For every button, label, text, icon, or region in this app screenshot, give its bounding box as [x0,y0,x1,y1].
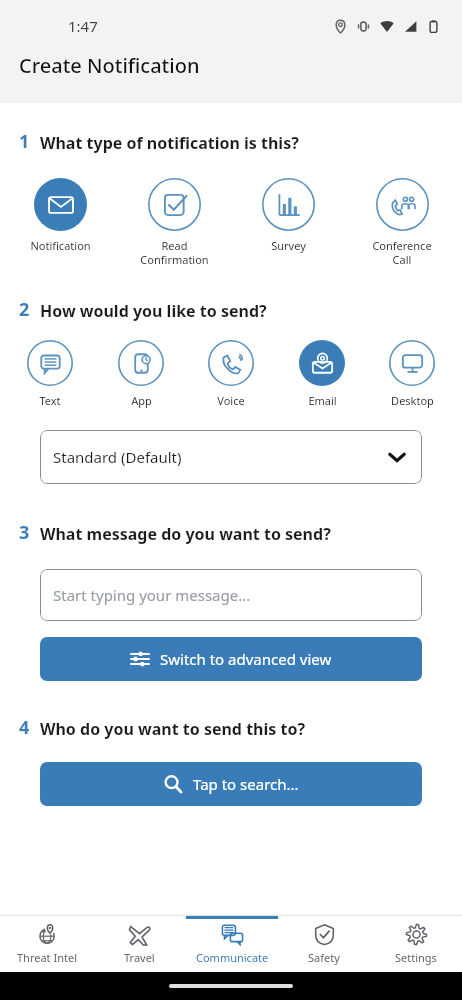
staticText: Settings [395,950,437,965]
staticText: Desktop [391,393,434,408]
staticText: Who do you want to send this to? [40,718,306,740]
staticText: Standard (Default) [53,447,182,467]
button[interactable]: Tap to search... [40,762,422,806]
staticText: Switch to advanced view [160,649,332,669]
staticText: 2 [19,297,30,322]
staticText: Notification [30,238,91,253]
staticText: Read Confirmation [140,238,209,267]
button[interactable]: Standard (Default) [40,430,422,484]
staticText: What message do you want to send? [40,523,331,545]
staticText: Survey [271,238,306,253]
staticText: 3 [19,520,30,545]
staticText: Safety [308,950,340,965]
staticText: Text [39,393,61,408]
staticText: Communicate [196,950,269,965]
staticText: Conference Call [372,238,432,267]
staticText: Email [308,393,337,408]
button[interactable]: Start typing your message... [40,569,422,621]
button[interactable]: Conference Call [356,178,448,267]
staticText: 1 [19,129,30,154]
staticText: Threat Intel [17,950,77,965]
staticText: Start typing your message... [53,585,251,605]
staticText: Tap to search... [193,774,299,794]
staticText: App [131,393,152,408]
staticText: Voice [217,393,245,408]
staticText: Create Notification [19,52,200,79]
button[interactable]: Communicate [186,916,278,972]
button[interactable]: Desktop [372,340,452,408]
button[interactable]: Safety [278,916,370,972]
button[interactable]: Email [282,340,362,408]
staticText: What type of notification is this? [40,132,299,154]
button[interactable]: Settings [370,916,462,972]
button[interactable]: Survey [242,178,334,253]
button[interactable]: Read Confirmation [128,178,220,267]
button[interactable]: App [101,340,181,408]
button[interactable]: Text [10,340,90,408]
staticText: 4 [19,715,30,740]
staticText: 1:47 [68,16,98,36]
button[interactable]: Switch to advanced view [40,637,422,681]
button[interactable]: Threat Intel [0,916,93,972]
button[interactable]: Travel [93,916,186,972]
button[interactable]: Voice [191,340,271,408]
button[interactable]: Notification [14,178,106,253]
staticText: Travel [124,950,155,965]
staticText: How would you like to send? [40,300,267,322]
